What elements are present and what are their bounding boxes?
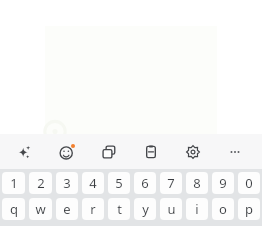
button[interactable]: 0 bbox=[238, 172, 260, 194]
staticText: 0 bbox=[245, 174, 253, 192]
button[interactable]: 5 bbox=[108, 172, 130, 194]
button[interactable]: 2 bbox=[29, 172, 52, 194]
staticText: q bbox=[10, 200, 18, 218]
button[interactable]: p bbox=[238, 198, 260, 220]
staticText: 3 bbox=[63, 174, 71, 192]
button[interactable]: Clipboard bbox=[130, 134, 172, 169]
staticText: 8 bbox=[193, 174, 201, 192]
staticText: o bbox=[219, 200, 227, 218]
button[interactable]: 4 bbox=[82, 172, 104, 194]
button[interactable]: u bbox=[160, 198, 182, 220]
staticText: 7 bbox=[167, 174, 175, 192]
staticText: e bbox=[63, 200, 71, 218]
button[interactable]: e bbox=[56, 198, 78, 220]
button[interactable]: 7 bbox=[160, 172, 182, 194]
button[interactable]: Settings bbox=[172, 134, 214, 169]
button[interactable]: 3 bbox=[56, 172, 78, 194]
staticText: t bbox=[117, 200, 122, 218]
staticText: i bbox=[195, 200, 199, 218]
staticText: 6 bbox=[141, 174, 149, 192]
button[interactable]: Emoji bbox=[45, 134, 88, 169]
staticText: 1 bbox=[10, 174, 18, 192]
button[interactable]: w bbox=[29, 198, 52, 220]
staticText: w bbox=[35, 200, 46, 218]
staticText: 2 bbox=[37, 174, 45, 192]
button[interactable]: 9 bbox=[212, 172, 234, 194]
button[interactable]: r bbox=[82, 198, 104, 220]
button[interactable]: q bbox=[2, 198, 25, 220]
button[interactable]: i bbox=[186, 198, 208, 220]
staticText: p bbox=[245, 200, 253, 218]
staticText: 9 bbox=[219, 174, 227, 192]
button[interactable]: 1 bbox=[2, 172, 25, 194]
button[interactable]: 8 bbox=[186, 172, 208, 194]
button[interactable]: t bbox=[108, 198, 130, 220]
button[interactable]: o bbox=[212, 198, 234, 220]
staticText: u bbox=[167, 200, 176, 218]
button[interactable]: More options bbox=[214, 134, 256, 169]
staticText: 4 bbox=[89, 174, 97, 192]
button[interactable]: Magic compose bbox=[2, 134, 45, 169]
staticText: r bbox=[90, 200, 96, 218]
staticText: y bbox=[142, 200, 149, 218]
button[interactable]: y bbox=[134, 198, 156, 220]
button[interactable]: Stickers bbox=[88, 134, 130, 169]
button[interactable]: 6 bbox=[134, 172, 156, 194]
staticText: 5 bbox=[115, 174, 123, 192]
